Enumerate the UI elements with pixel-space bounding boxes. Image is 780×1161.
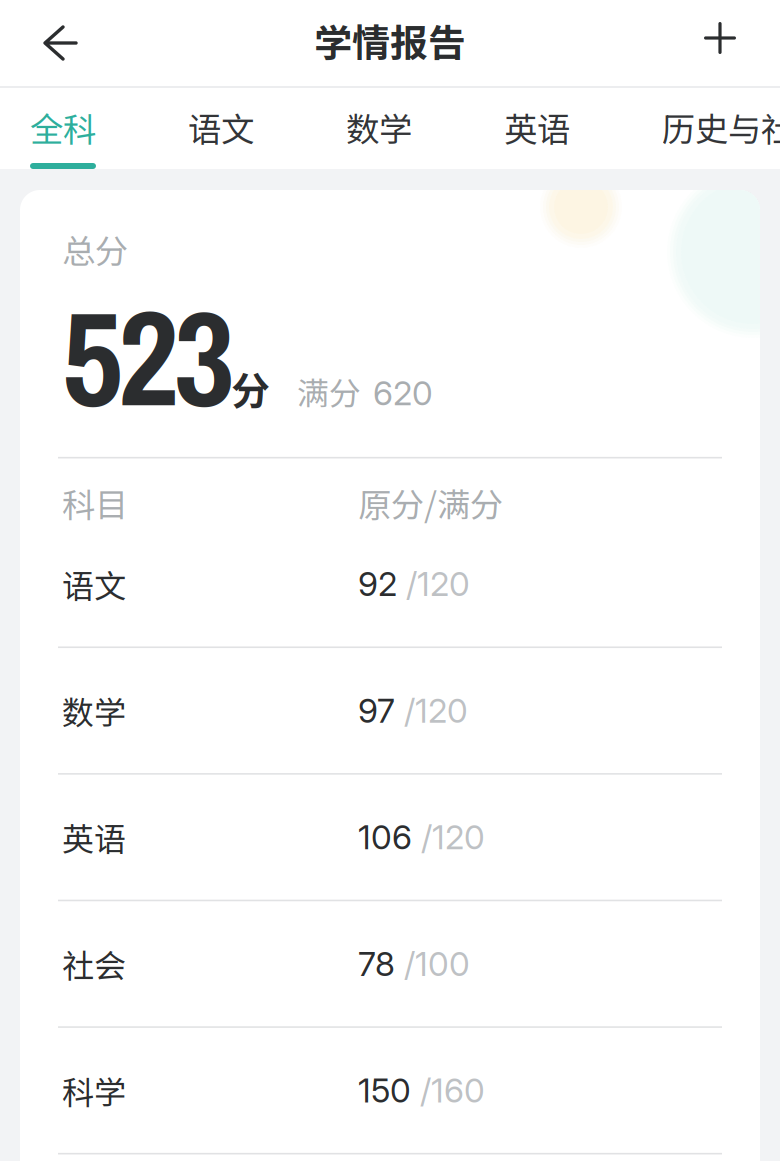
staticText: /120 [412, 817, 485, 857]
staticText: 英语 [62, 814, 126, 860]
staticText: 数学 [62, 687, 126, 734]
staticText: 总分 [62, 225, 128, 273]
button[interactable]: 数学 [20, 648, 760, 773]
staticText: 原分/满分 [358, 478, 503, 527]
staticText: 分 [231, 360, 270, 416]
staticText: /120 [397, 564, 470, 604]
button[interactable]: 语文 [20, 521, 760, 646]
staticText: 数学 [346, 103, 412, 151]
staticText: 620 [373, 373, 433, 413]
button[interactable]: 全科 [0, 88, 142, 169]
staticText: 150 [358, 1070, 411, 1110]
button[interactable]: 科学 [20, 1028, 760, 1153]
button[interactable]: 社会 [20, 901, 760, 1026]
button[interactable]: Add [660, 0, 780, 86]
staticText: 语文 [188, 103, 254, 151]
button[interactable]: 英语 [458, 88, 616, 169]
staticText: 全科 [30, 103, 96, 151]
staticText: /120 [395, 690, 468, 731]
staticText: 科目 [62, 478, 128, 527]
staticText: 语文 [62, 561, 126, 607]
button[interactable]: 历史 [20, 1154, 760, 1161]
staticText: /100 [395, 944, 470, 984]
button[interactable]: 数学 [300, 88, 458, 169]
staticText: 满分 [297, 368, 361, 414]
staticText: 英语 [504, 103, 570, 151]
staticText: 社会 [62, 941, 126, 987]
staticText: 523 [62, 267, 235, 447]
staticText: 92 [358, 564, 397, 604]
staticText: 78 [358, 944, 395, 984]
staticText: /160 [411, 1070, 485, 1110]
staticText: 106 [358, 817, 412, 857]
button[interactable]: 英语 [20, 775, 760, 900]
button[interactable]: Back [0, 0, 121, 86]
staticText: 历史与社会 [662, 103, 780, 151]
staticText: 科学 [62, 1067, 126, 1113]
staticText: 97 [358, 690, 395, 731]
staticText: 学情报告 [314, 13, 466, 68]
button[interactable]: 历史与社会 [616, 88, 780, 169]
button[interactable]: 语文 [142, 88, 300, 169]
